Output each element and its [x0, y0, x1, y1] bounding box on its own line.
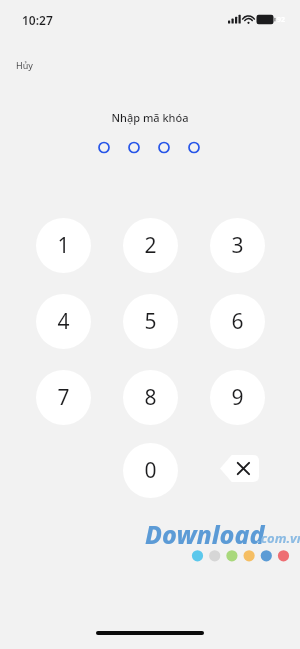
button[interactable]: 6	[210, 294, 265, 349]
staticText: 6	[231, 307, 244, 336]
staticText: 92	[277, 15, 286, 25]
staticText: 9	[231, 383, 244, 412]
staticText: Hủy	[16, 59, 33, 71]
button[interactable]: 2	[123, 218, 178, 273]
button[interactable]: 7	[36, 370, 91, 425]
staticText: 1	[57, 231, 70, 260]
button[interactable]: 3	[210, 218, 265, 273]
staticText: 0	[144, 456, 157, 485]
button[interactable]: Delete	[220, 455, 259, 482]
button[interactable]: Hủy	[8, 55, 41, 75]
staticText: Nhập mã khóa	[111, 110, 189, 125]
staticText: 3	[231, 231, 244, 260]
button[interactable]: 4	[36, 294, 91, 349]
button[interactable]: 5	[123, 294, 178, 349]
staticText: 8	[144, 383, 157, 412]
staticText: .com.vn	[257, 529, 300, 547]
staticText: 4	[57, 307, 70, 336]
staticText: 7	[57, 383, 70, 412]
button[interactable]: 9	[210, 370, 265, 425]
staticText: Download	[145, 517, 265, 551]
staticText: 2	[144, 231, 157, 260]
staticText: 5	[144, 307, 157, 336]
button[interactable]: 0	[123, 443, 178, 498]
staticText: 10:27	[22, 12, 53, 28]
button[interactable]: 8	[123, 370, 178, 425]
button[interactable]: 1	[36, 218, 91, 273]
